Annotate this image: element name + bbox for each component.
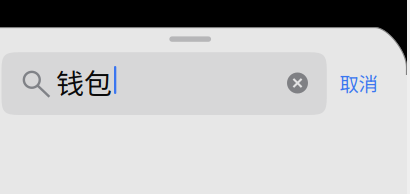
staticText: 取消 (339, 69, 377, 97)
staticText: 钱包 (56, 61, 112, 102)
button[interactable]: Clear text (287, 72, 308, 93)
button[interactable] (1, 52, 327, 115)
button[interactable]: 取消 (339, 69, 377, 97)
